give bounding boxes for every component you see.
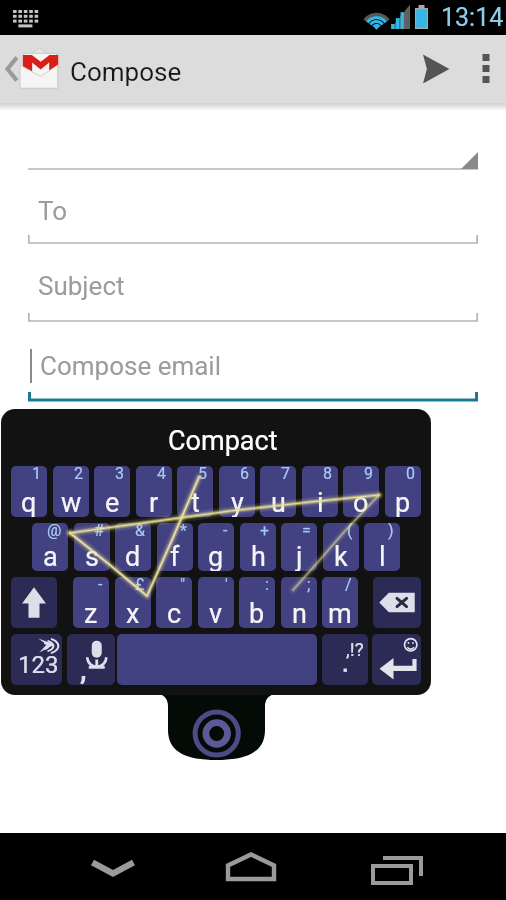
staticText: Compose email bbox=[40, 351, 222, 381]
staticText: ; bbox=[307, 577, 311, 594]
button[interactable]: e bbox=[94, 466, 130, 517]
button[interactable]: j bbox=[281, 523, 317, 571]
button[interactable]: i bbox=[302, 466, 338, 517]
staticText: m bbox=[328, 598, 352, 628]
staticText: 123 bbox=[18, 651, 59, 679]
button[interactable]: Compose email bbox=[0, 321, 506, 402]
button[interactable]: w bbox=[53, 466, 89, 517]
staticText: s bbox=[85, 541, 99, 571]
staticText: ) bbox=[388, 523, 394, 540]
staticText: b bbox=[249, 598, 265, 628]
staticText: 0 bbox=[406, 466, 415, 483]
staticText: e bbox=[105, 487, 120, 517]
button[interactable]: Subject bbox=[0, 243, 506, 323]
button[interactable]: o bbox=[343, 466, 379, 517]
button[interactable]: t bbox=[177, 466, 213, 517]
button[interactable]: v bbox=[198, 577, 234, 628]
button[interactable]: s bbox=[74, 523, 110, 571]
staticText: ,!? bbox=[346, 638, 364, 660]
button[interactable]: b bbox=[239, 577, 275, 628]
staticText: z bbox=[84, 598, 98, 628]
staticText: t bbox=[191, 487, 200, 517]
staticText: = bbox=[302, 523, 311, 540]
staticText: £ bbox=[135, 577, 145, 594]
staticText: * bbox=[180, 523, 187, 540]
staticText: a bbox=[43, 541, 58, 571]
staticText: x bbox=[126, 598, 140, 628]
button[interactable]: z bbox=[73, 577, 109, 628]
button[interactable]: Space bbox=[117, 634, 317, 685]
button[interactable]: Punctuation bbox=[322, 634, 368, 685]
staticText: & bbox=[135, 523, 145, 540]
staticText: ' bbox=[225, 577, 228, 594]
button[interactable]: p bbox=[385, 466, 421, 517]
staticText: 13:14 bbox=[441, 3, 504, 32]
button[interactable]: n bbox=[281, 577, 317, 628]
button[interactable]: q bbox=[11, 466, 47, 517]
staticText: 2 bbox=[74, 466, 83, 483]
staticText: , bbox=[80, 654, 87, 685]
staticText: - bbox=[98, 577, 103, 594]
staticText: 8 bbox=[323, 466, 332, 483]
staticText: 5 bbox=[198, 466, 207, 483]
button[interactable]: d bbox=[115, 523, 151, 571]
button[interactable]: Home bbox=[196, 833, 310, 900]
button[interactable]: a bbox=[32, 523, 68, 571]
staticText: Compose bbox=[70, 57, 182, 87]
staticText: ( bbox=[347, 523, 353, 540]
button[interactable]: Enter bbox=[372, 634, 421, 685]
staticText: i bbox=[317, 487, 324, 517]
staticText: - bbox=[223, 523, 228, 540]
staticText: g bbox=[208, 541, 224, 571]
staticText: j bbox=[296, 541, 303, 571]
button[interactable]: Recent apps bbox=[340, 833, 454, 900]
button[interactable]: Send bbox=[404, 35, 466, 103]
staticText: To bbox=[38, 196, 68, 226]
staticText: @ bbox=[47, 523, 62, 540]
staticText: u bbox=[271, 487, 286, 517]
staticText: r bbox=[149, 487, 159, 517]
staticText: p bbox=[395, 487, 411, 517]
button[interactable]: l bbox=[364, 523, 400, 571]
staticText: f bbox=[170, 541, 180, 571]
button[interactable]: Navigate up bbox=[0, 35, 190, 103]
button[interactable]: Hide keyboard bbox=[56, 833, 170, 900]
staticText: : bbox=[265, 577, 269, 594]
button[interactable]: Voice input bbox=[67, 634, 115, 685]
staticText: k bbox=[334, 541, 348, 571]
button[interactable]: r bbox=[136, 466, 172, 517]
button[interactable]: g bbox=[198, 523, 234, 571]
staticText: Subject bbox=[38, 271, 125, 301]
button[interactable]: From bbox=[0, 111, 506, 171]
button[interactable]: u bbox=[260, 466, 296, 517]
staticText: Compact bbox=[168, 425, 278, 457]
button[interactable]: k bbox=[323, 523, 359, 571]
staticText: / bbox=[345, 577, 352, 594]
staticText: 6 bbox=[240, 466, 249, 483]
staticText: 3 bbox=[115, 466, 124, 483]
staticText: w bbox=[61, 487, 82, 517]
button[interactable]: Backspace bbox=[373, 577, 421, 628]
button[interactable]: c bbox=[156, 577, 192, 628]
staticText: 1 bbox=[32, 466, 41, 483]
button[interactable]: Shift bbox=[11, 577, 57, 628]
button[interactable]: x bbox=[115, 577, 151, 628]
staticText: v bbox=[209, 598, 223, 628]
staticText: " bbox=[180, 577, 186, 594]
button[interactable]: y bbox=[219, 466, 255, 517]
staticText: c bbox=[167, 598, 182, 628]
button[interactable]: Numbers bbox=[11, 634, 62, 685]
staticText: + bbox=[260, 523, 270, 540]
button[interactable]: m bbox=[322, 577, 358, 628]
button[interactable]: To bbox=[0, 169, 506, 245]
staticText: 9 bbox=[364, 466, 373, 483]
staticText: 4 bbox=[157, 466, 166, 483]
button[interactable]: More options bbox=[466, 35, 506, 103]
staticText: n bbox=[292, 598, 307, 628]
staticText: 7 bbox=[281, 466, 290, 483]
staticText: l bbox=[379, 541, 386, 571]
staticText: q bbox=[21, 487, 37, 517]
button[interactable]: f bbox=[157, 523, 193, 571]
staticText: o bbox=[353, 487, 369, 517]
button[interactable]: h bbox=[240, 523, 276, 571]
